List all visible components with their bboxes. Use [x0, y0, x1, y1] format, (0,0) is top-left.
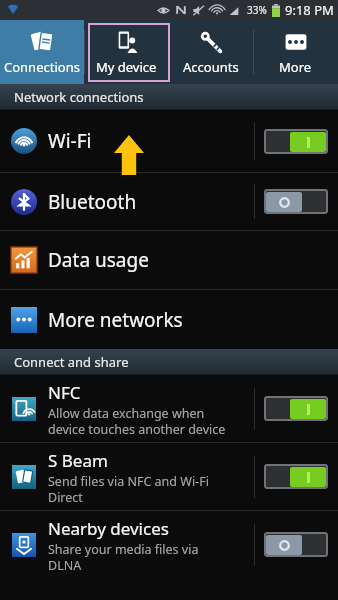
- staticText: Share your media files via DLNA: [48, 541, 199, 573]
- button[interactable]: NFC: [0, 375, 338, 442]
- staticText: More networks: [48, 307, 183, 333]
- staticText: More: [279, 58, 312, 76]
- button[interactable]: More: [253, 20, 338, 84]
- staticText: Accounts: [183, 58, 239, 76]
- staticText: Data usage: [48, 247, 149, 273]
- staticText: Nearby devices: [48, 517, 169, 540]
- button[interactable]: My device: [84, 20, 168, 84]
- staticText: 9:18 PM: [285, 1, 334, 19]
- staticText: Network connections: [14, 88, 144, 106]
- button[interactable]: S Beam: [0, 443, 338, 510]
- button[interactable]: Toggle on: [264, 464, 328, 489]
- staticText: Connections: [4, 58, 80, 76]
- staticText: 33%: [247, 3, 267, 17]
- button[interactable]: Toggle off: [264, 532, 328, 557]
- staticText: Send files via NFC and Wi-Fi Direct: [48, 473, 209, 505]
- staticText: Connect and share: [14, 353, 129, 371]
- button[interactable]: Nearby devices: [0, 511, 338, 578]
- staticText: Bluetooth: [48, 189, 137, 215]
- button[interactable]: Bluetooth: [0, 173, 338, 230]
- button[interactable]: Toggle on: [264, 129, 328, 154]
- button[interactable]: Data usage: [0, 231, 338, 289]
- button[interactable]: Wi-Fi: [0, 110, 338, 172]
- button[interactable]: Accounts: [168, 20, 253, 84]
- button[interactable]: Connections: [0, 20, 84, 84]
- staticText: Allow data exchange when device touches …: [48, 405, 226, 437]
- staticText: NFC: [48, 381, 81, 404]
- staticText: My device: [96, 58, 157, 76]
- button[interactable]: Toggle on: [264, 396, 328, 421]
- staticText: S Beam: [48, 449, 108, 472]
- staticText: Wi-Fi: [48, 128, 92, 154]
- button[interactable]: Toggle off: [264, 189, 328, 214]
- button[interactable]: More networks: [0, 290, 338, 349]
